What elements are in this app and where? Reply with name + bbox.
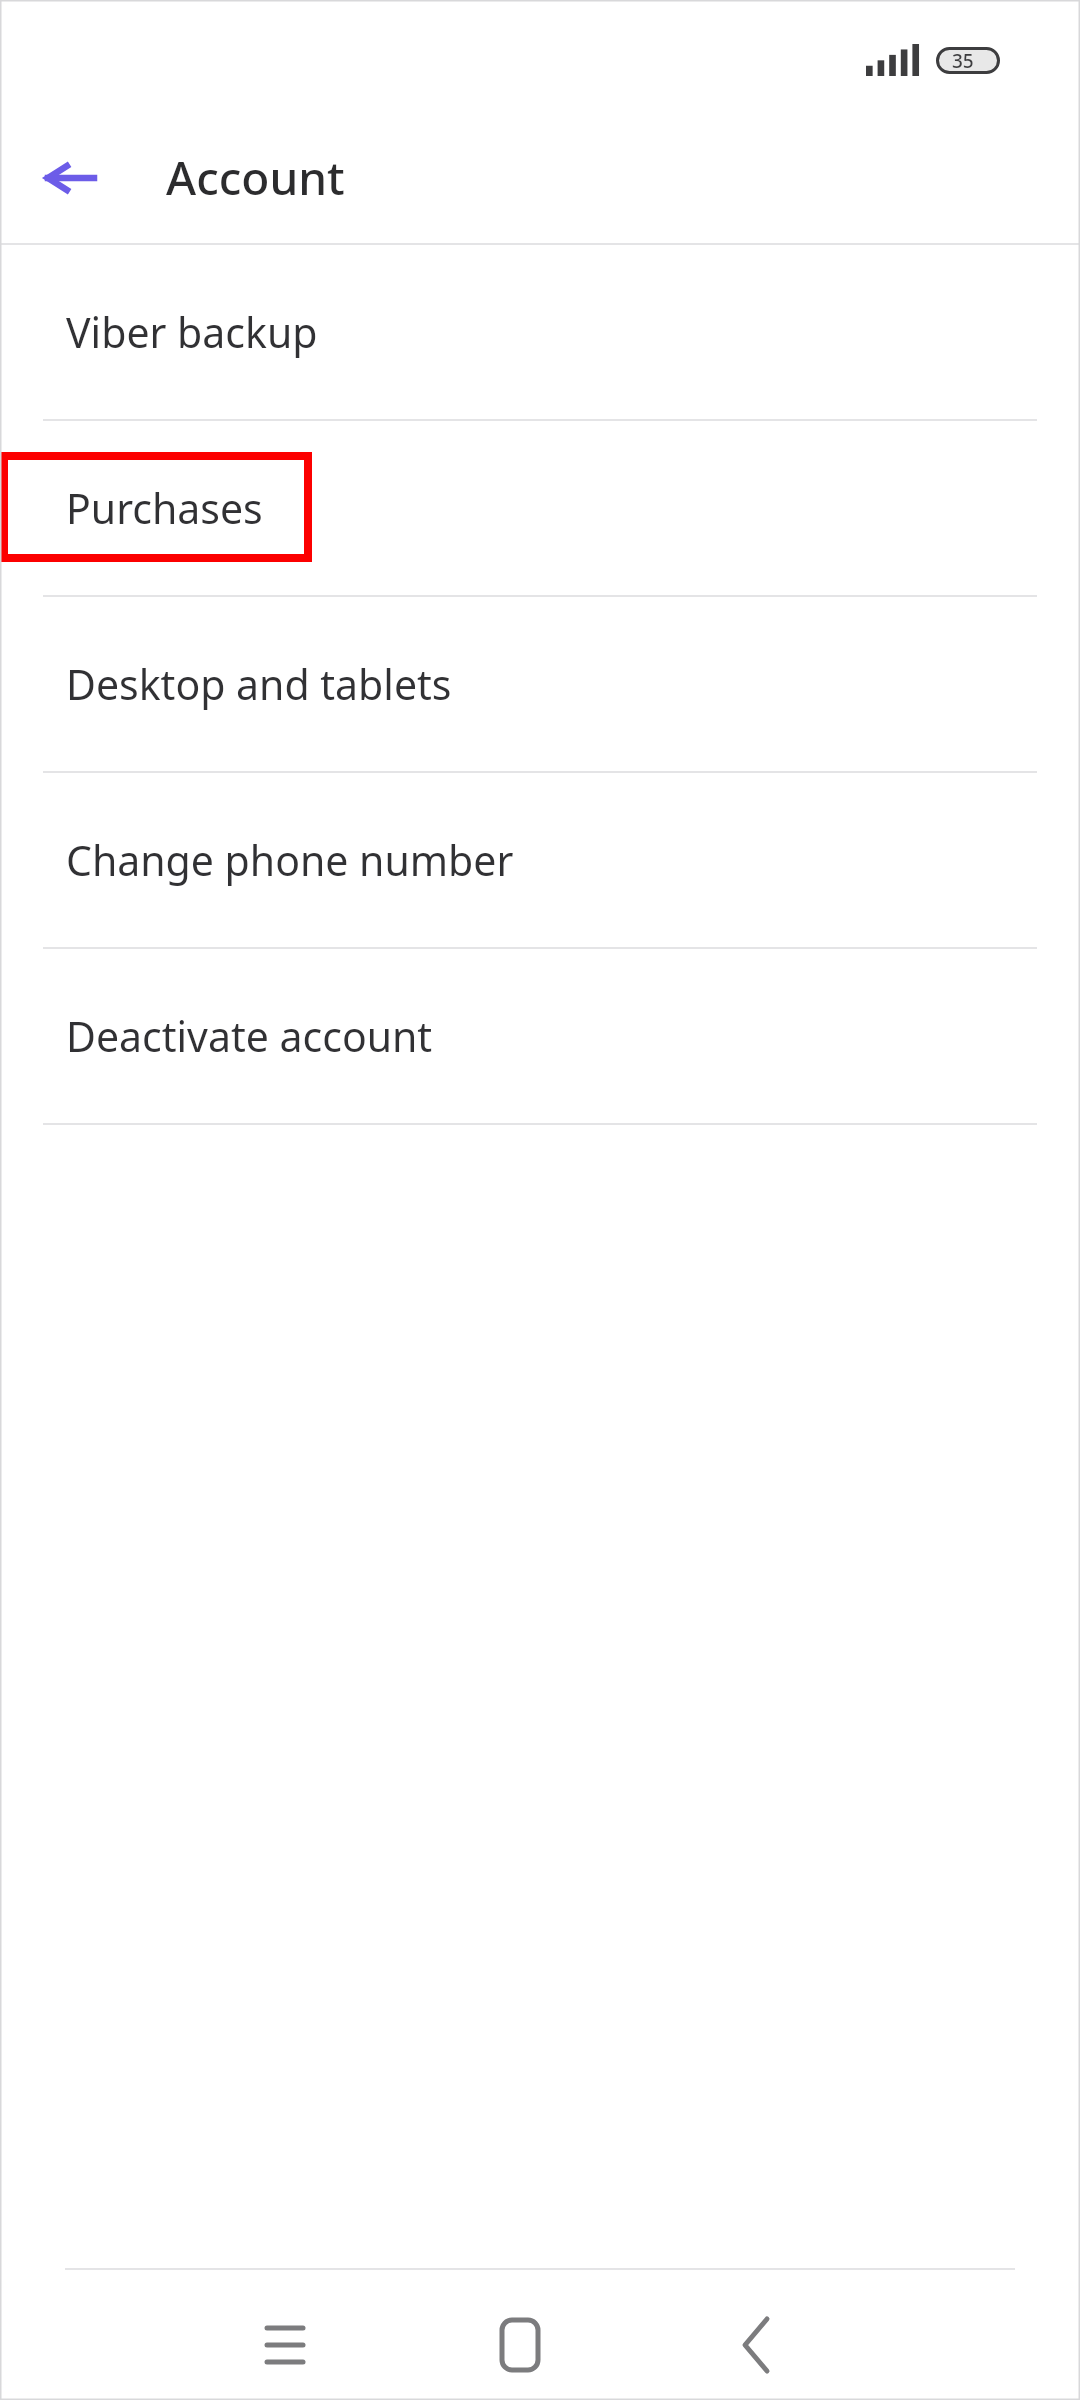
staticText: Purchases	[66, 480, 263, 536]
staticText: Viber backup	[66, 304, 318, 360]
button[interactable]: Back	[700, 2290, 810, 2400]
staticText: Change phone number	[66, 832, 514, 888]
button[interactable]: Purchases	[0, 420, 1080, 596]
staticText: Account	[166, 146, 345, 209]
button[interactable]: Recents	[230, 2290, 340, 2400]
button[interactable]: Viber backup	[0, 244, 1080, 420]
staticText: 35	[952, 48, 974, 74]
button[interactable]: Change phone number	[0, 772, 1080, 948]
button[interactable]: Deactivate account	[0, 948, 1080, 1124]
button[interactable]: Back	[34, 142, 106, 214]
button[interactable]: Desktop and tablets	[0, 596, 1080, 772]
button[interactable]: Home	[465, 2290, 575, 2400]
staticText: Desktop and tablets	[66, 656, 452, 712]
staticText: Deactivate account	[66, 1008, 433, 1064]
